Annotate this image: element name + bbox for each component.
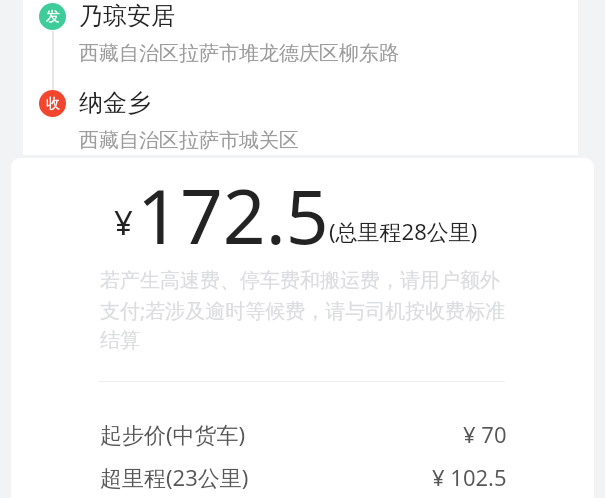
staticText: 收 <box>46 95 60 113</box>
staticText: ¥ <box>114 200 133 245</box>
staticText: (总里程28公里) <box>329 216 478 246</box>
staticText: 超里程(23公里) <box>100 462 249 492</box>
button[interactable]: 超里程(23公里) <box>100 460 507 494</box>
staticText: 172.5 <box>137 164 329 258</box>
staticText: 西藏自治区拉萨市城关区 <box>79 128 299 153</box>
staticText: 纳金乡 <box>79 88 151 118</box>
button[interactable]: Delivery location <box>39 90 66 117</box>
staticText: 发 <box>46 8 60 26</box>
staticText: ¥ 70 <box>463 419 507 449</box>
staticText: 西藏自治区拉萨市堆龙德庆区柳东路 <box>79 41 399 66</box>
button[interactable] <box>23 0 578 155</box>
button[interactable]: ¥ <box>11 158 594 498</box>
staticText: 乃琼安居 <box>79 1 175 31</box>
button[interactable]: Pickup location <box>39 3 66 30</box>
staticText: 若产生高速费、停车费和搬运费，请用户额外支付;若涉及逾时等候费，请与司机按收费标… <box>100 268 513 353</box>
staticText: ¥ 102.5 <box>432 462 507 492</box>
staticText: 起步价(中货车) <box>100 419 246 449</box>
button[interactable]: 起步价(中货车) <box>100 417 507 451</box>
